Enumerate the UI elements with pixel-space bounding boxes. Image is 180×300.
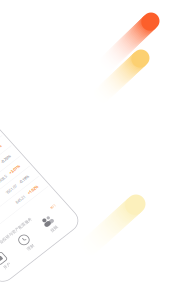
staticText: 精选服务	[5, 183, 33, 192]
staticText: 恒生科技	[5, 144, 21, 149]
button[interactable]: 理财	[37, 202, 59, 220]
staticText: 为您推荐 · 专业投研与资产配置服务	[5, 192, 68, 198]
button[interactable]: 沪深 300	[0, 153, 102, 167]
staticText: 沪深 300	[5, 157, 20, 162]
button[interactable]: 开户	[7, 202, 29, 220]
staticText: 理财	[44, 215, 52, 220]
staticText: 科创 50	[5, 171, 18, 176]
staticText: 投顾	[74, 215, 82, 220]
button[interactable]: 中国平安	[0, 126, 102, 139]
button[interactable]: 投顾	[67, 202, 89, 220]
button[interactable]: 恒生科技	[0, 139, 102, 153]
button[interactable]: 科创 50	[0, 167, 102, 180]
